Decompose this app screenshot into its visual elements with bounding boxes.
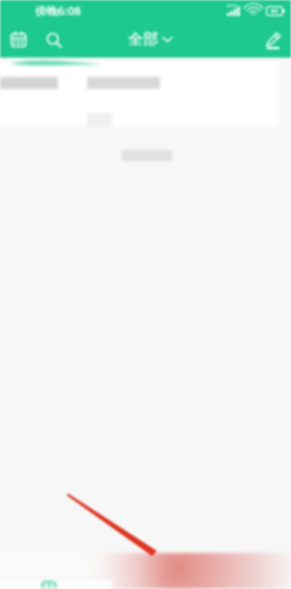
staticText: 86 <box>271 7 278 15</box>
button[interactable]: Discover <box>194 578 291 589</box>
staticText: 全部 <box>128 30 158 49</box>
button[interactable]: Search <box>36 21 72 58</box>
button[interactable]: 全部 <box>122 25 178 54</box>
button[interactable]: Calendar <box>0 21 36 58</box>
button[interactable]: Contacts <box>97 578 194 589</box>
button[interactable]: Compose <box>255 21 291 58</box>
button[interactable]: Messages <box>0 578 97 589</box>
staticText: 傍晚6:08 <box>35 3 81 19</box>
